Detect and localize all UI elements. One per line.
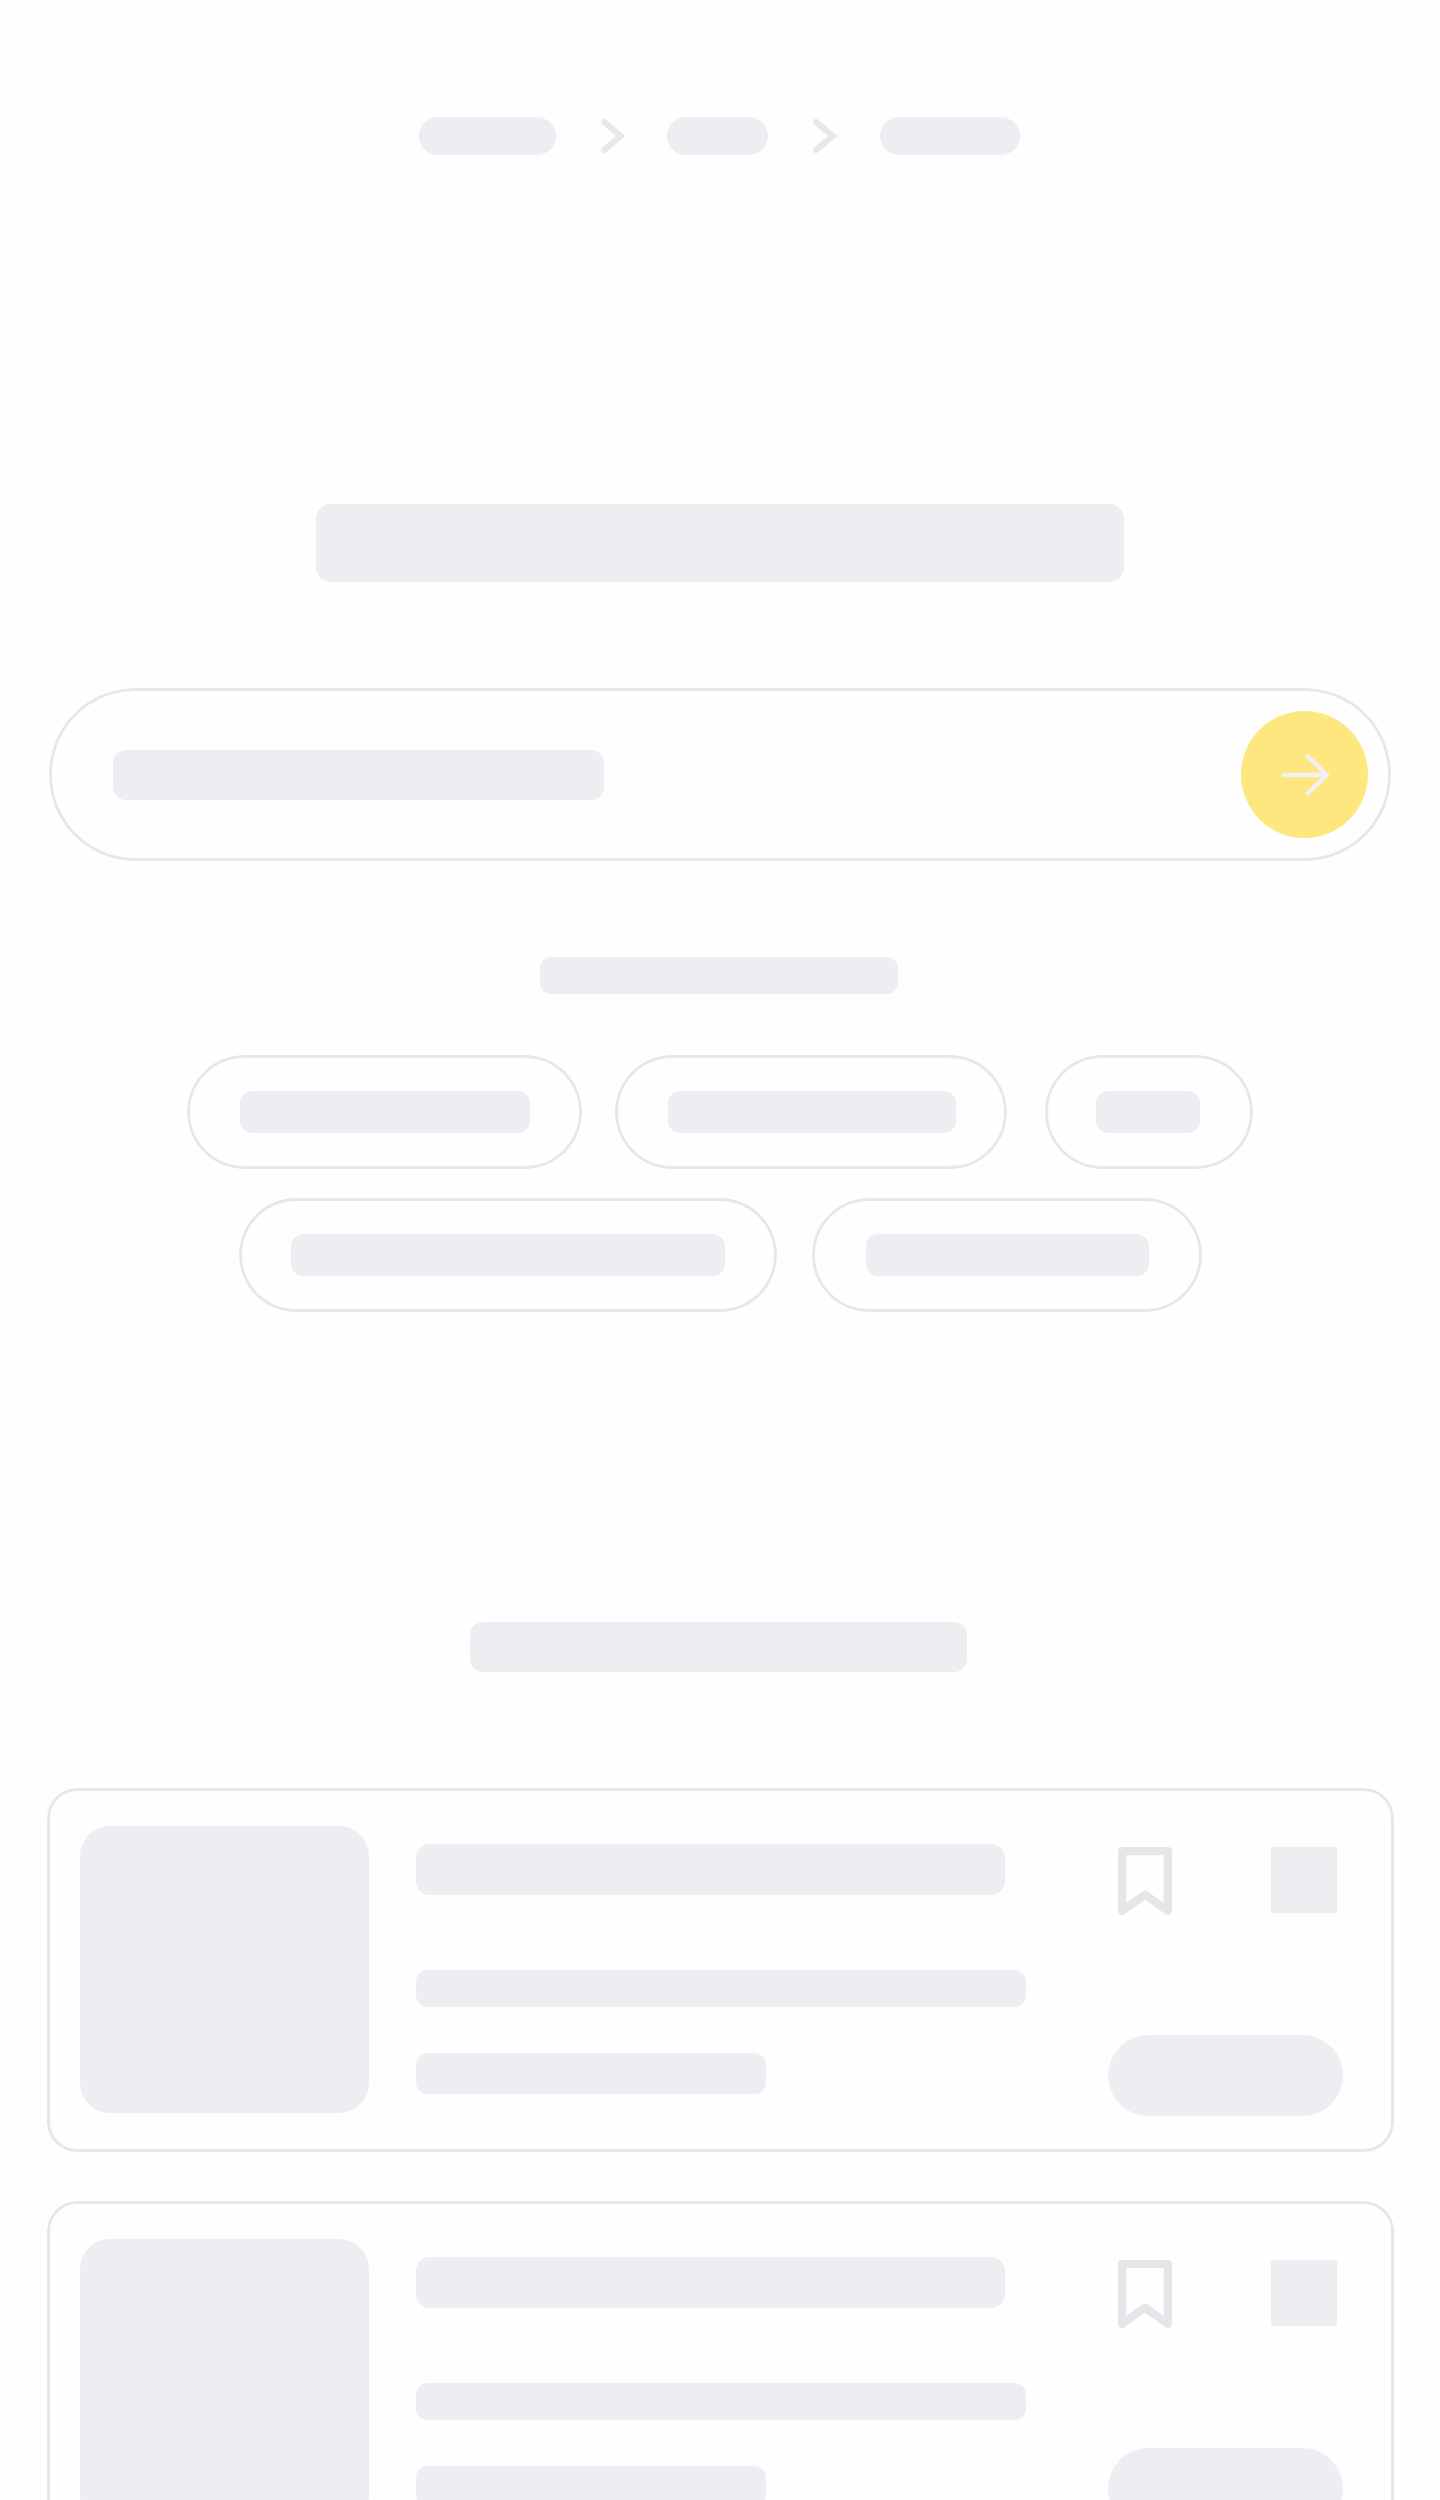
button[interactable]: Bookmark [1103,2250,1187,2338]
button[interactable]: Category [667,117,768,155]
button[interactable]: Next crumb [812,118,836,154]
button[interactable]: Filter [187,1055,582,1169]
button[interactable]: Bookmark [47,1788,1394,2152]
button[interactable]: Filter [812,1198,1202,1312]
button[interactable]: Bookmark [1103,1837,1187,1925]
button[interactable]: Next crumb [600,118,624,154]
button[interactable]: Search [49,688,1391,861]
button[interactable]: Current page [880,117,1020,155]
button[interactable]: Filter [615,1055,1007,1169]
button[interactable]: Filter [239,1198,777,1312]
button[interactable]: Filter [1045,1055,1253,1169]
button[interactable]: Open [1108,2448,1343,2500]
button[interactable]: Search [1241,711,1368,838]
button[interactable]: Bookmark [47,2201,1394,2500]
button[interactable]: Home [419,117,556,155]
button[interactable]: Open [1108,2035,1343,2116]
